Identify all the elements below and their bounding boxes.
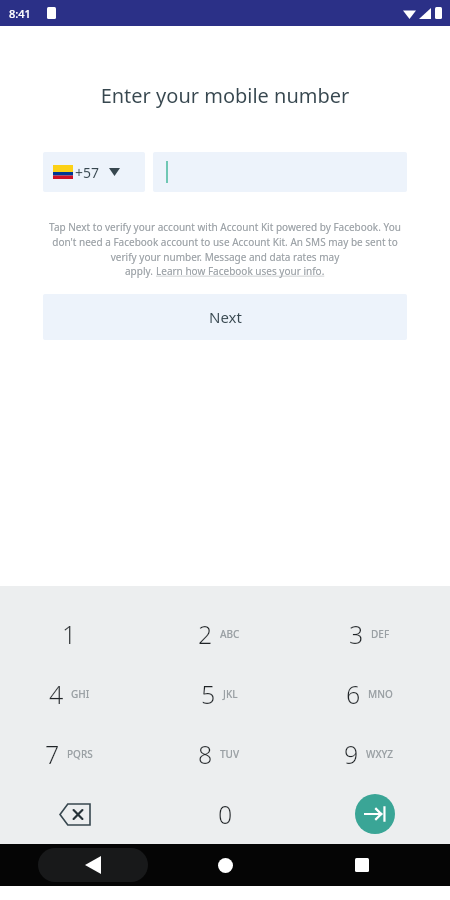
staticText: 3 — [349, 617, 364, 651]
button[interactable]: 6 — [300, 664, 450, 724]
staticText: Next — [209, 307, 242, 327]
staticText: MNO — [368, 687, 393, 701]
button[interactable]: 5 — [150, 664, 300, 724]
button[interactable]: Learn how Facebook uses your info. — [156, 264, 325, 278]
staticText: Enter your mobile number — [0, 82, 450, 109]
staticText: 7 — [45, 737, 60, 771]
button[interactable]: Home — [205, 845, 245, 885]
staticText: GHI — [71, 687, 90, 701]
button[interactable]: Next — [43, 294, 407, 340]
staticText: DEF — [371, 627, 390, 641]
staticText: 9 — [344, 737, 359, 771]
button[interactable]: Next — [355, 794, 395, 834]
staticText: 1 — [62, 617, 77, 651]
button[interactable]: Backspace — [0, 784, 150, 844]
staticText: +57 — [75, 163, 100, 182]
button[interactable]: 2 — [150, 604, 300, 664]
staticText: apply. — [125, 264, 156, 278]
staticText: 8:41 — [9, 6, 31, 21]
button[interactable]: Back — [38, 848, 148, 882]
staticText: 5 — [201, 677, 216, 711]
staticText: TUV — [220, 747, 240, 761]
button[interactable]: 7 — [0, 724, 150, 784]
button[interactable]: 3 — [300, 604, 450, 664]
staticText: Tap Next to verify your account with Acc… — [48, 220, 402, 264]
button[interactable]: 1 — [0, 604, 150, 664]
staticText: 8 — [198, 737, 213, 771]
staticText: 4 — [49, 677, 64, 711]
button[interactable]: 0 — [150, 784, 300, 844]
button[interactable]: 9 — [300, 724, 450, 784]
staticText: JKL — [223, 687, 238, 701]
staticText: PQRS — [67, 747, 93, 761]
button[interactable]: 8 — [150, 724, 300, 784]
button[interactable] — [153, 152, 407, 192]
staticText: 0 — [218, 797, 233, 831]
button[interactable]: +57 — [43, 152, 145, 192]
staticText: ABC — [220, 627, 240, 641]
staticText: 2 — [198, 617, 213, 651]
staticText: 6 — [346, 677, 361, 711]
button[interactable]: 4 — [0, 664, 150, 724]
staticText: WXYZ — [366, 747, 394, 761]
button[interactable]: Recent apps — [342, 845, 382, 885]
